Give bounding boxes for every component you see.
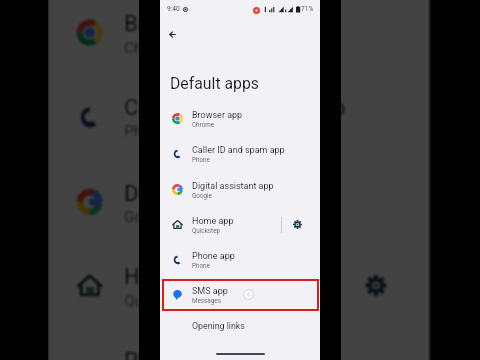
- staticText: Digital assistant app: [124, 182, 320, 208]
- staticText: Chrome: [124, 39, 179, 55]
- button[interactable]: Phone app: [160, 242, 320, 277]
- staticText: Phone app: [192, 251, 235, 262]
- button[interactable]: Digital assistant app: [48, 160, 430, 244]
- staticText: Browser app: [192, 110, 243, 121]
- staticText: Messages: [192, 297, 221, 304]
- staticText: Quickstep: [192, 227, 221, 234]
- button[interactable]: Digital assistant app: [160, 172, 320, 207]
- staticText: Phone: [124, 122, 167, 139]
- staticText: Digital assistant app: [192, 181, 274, 192]
- button[interactable]: Back: [164, 26, 180, 42]
- button[interactable]: Caller ID and spam app: [48, 74, 430, 158]
- staticText: Home app: [192, 216, 234, 227]
- staticText: Chrome: [192, 121, 215, 128]
- button[interactable]: Opening links: [192, 321, 245, 331]
- staticText: SMS app: [192, 286, 228, 297]
- button[interactable]: Home app: [160, 207, 320, 242]
- staticText: Home app: [124, 265, 224, 291]
- button[interactable]: Browser app: [48, 0, 430, 74]
- button[interactable]: Phone app: [48, 327, 430, 360]
- button[interactable]: Browser app: [160, 101, 320, 136]
- staticText: 71%: [301, 5, 314, 13]
- staticText: Phone: [192, 156, 210, 163]
- staticText: Quickstep: [124, 291, 193, 308]
- staticText: 9:40: [167, 5, 180, 13]
- staticText: Opening links: [192, 321, 245, 331]
- button[interactable]: Home app: [48, 244, 430, 327]
- staticText: Phone app: [124, 349, 227, 360]
- staticText: Caller ID and spam app: [124, 96, 346, 122]
- button[interactable]: Settings: [285, 212, 310, 237]
- staticText: Default apps: [170, 74, 259, 93]
- staticText: Caller ID and spam app: [192, 145, 285, 156]
- staticText: Google: [124, 208, 172, 225]
- button[interactable]: Caller ID and spam app: [160, 136, 320, 171]
- staticText: Phone: [192, 262, 210, 269]
- button[interactable]: Settings: [346, 256, 406, 315]
- staticText: Google: [192, 192, 212, 199]
- button[interactable]: SMS app: [160, 277, 320, 312]
- staticText: Browser app: [124, 12, 246, 39]
